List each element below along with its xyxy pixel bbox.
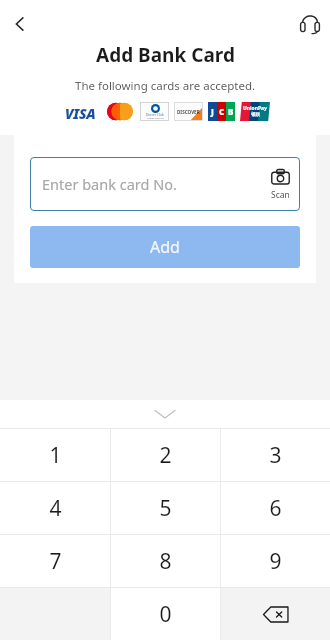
staticText: 3 bbox=[269, 441, 282, 470]
staticText: C bbox=[219, 106, 225, 117]
staticText: 银联 bbox=[251, 112, 260, 118]
button[interactable]: Hide keyboard bbox=[0, 400, 330, 428]
staticText: UnionPay bbox=[243, 105, 267, 112]
staticText: 4 bbox=[49, 494, 62, 523]
button[interactable]: Enter bank card No. bbox=[30, 157, 300, 211]
staticText: B bbox=[228, 106, 234, 117]
staticText: 0 bbox=[159, 600, 172, 629]
button[interactable]: Backspace bbox=[221, 588, 330, 640]
staticText: Enter bank card No. bbox=[42, 174, 177, 194]
staticText: DISCOVER bbox=[177, 109, 200, 115]
button[interactable]: 3 bbox=[221, 429, 330, 481]
staticText: VISA bbox=[65, 104, 96, 120]
staticText: 6 bbox=[269, 494, 282, 523]
button[interactable]: 1 bbox=[0, 429, 110, 481]
staticText: Add bbox=[150, 236, 180, 258]
staticText: 2 bbox=[159, 441, 172, 470]
button[interactable]: 0 bbox=[111, 588, 220, 640]
button[interactable]: Add bbox=[30, 226, 300, 268]
button[interactable]: 4 bbox=[0, 482, 110, 534]
staticText: 7 bbox=[49, 547, 62, 576]
staticText: Add Bank Card bbox=[96, 42, 235, 68]
staticText: 1 bbox=[49, 441, 62, 470]
staticText: J bbox=[211, 106, 214, 117]
button[interactable]: Back bbox=[4, 8, 36, 40]
staticText: 8 bbox=[159, 547, 172, 576]
button[interactable]: 5 bbox=[111, 482, 220, 534]
button[interactable]: Scan card bbox=[271, 168, 290, 201]
staticText: Scan bbox=[271, 189, 290, 201]
button[interactable]: 2 bbox=[111, 429, 220, 481]
staticText: The following cards are accepted. bbox=[75, 78, 256, 94]
staticText: 5 bbox=[159, 494, 172, 523]
button[interactable]: Customer support bbox=[294, 8, 326, 40]
button[interactable]: 6 bbox=[221, 482, 330, 534]
staticText: 9 bbox=[269, 547, 282, 576]
button[interactable]: 7 bbox=[0, 535, 110, 587]
button[interactable]: 8 bbox=[111, 535, 220, 587]
staticText: Diners Club bbox=[146, 113, 164, 117]
button[interactable]: 9 bbox=[221, 535, 330, 587]
staticText: INTERNATIONAL bbox=[147, 117, 164, 120]
